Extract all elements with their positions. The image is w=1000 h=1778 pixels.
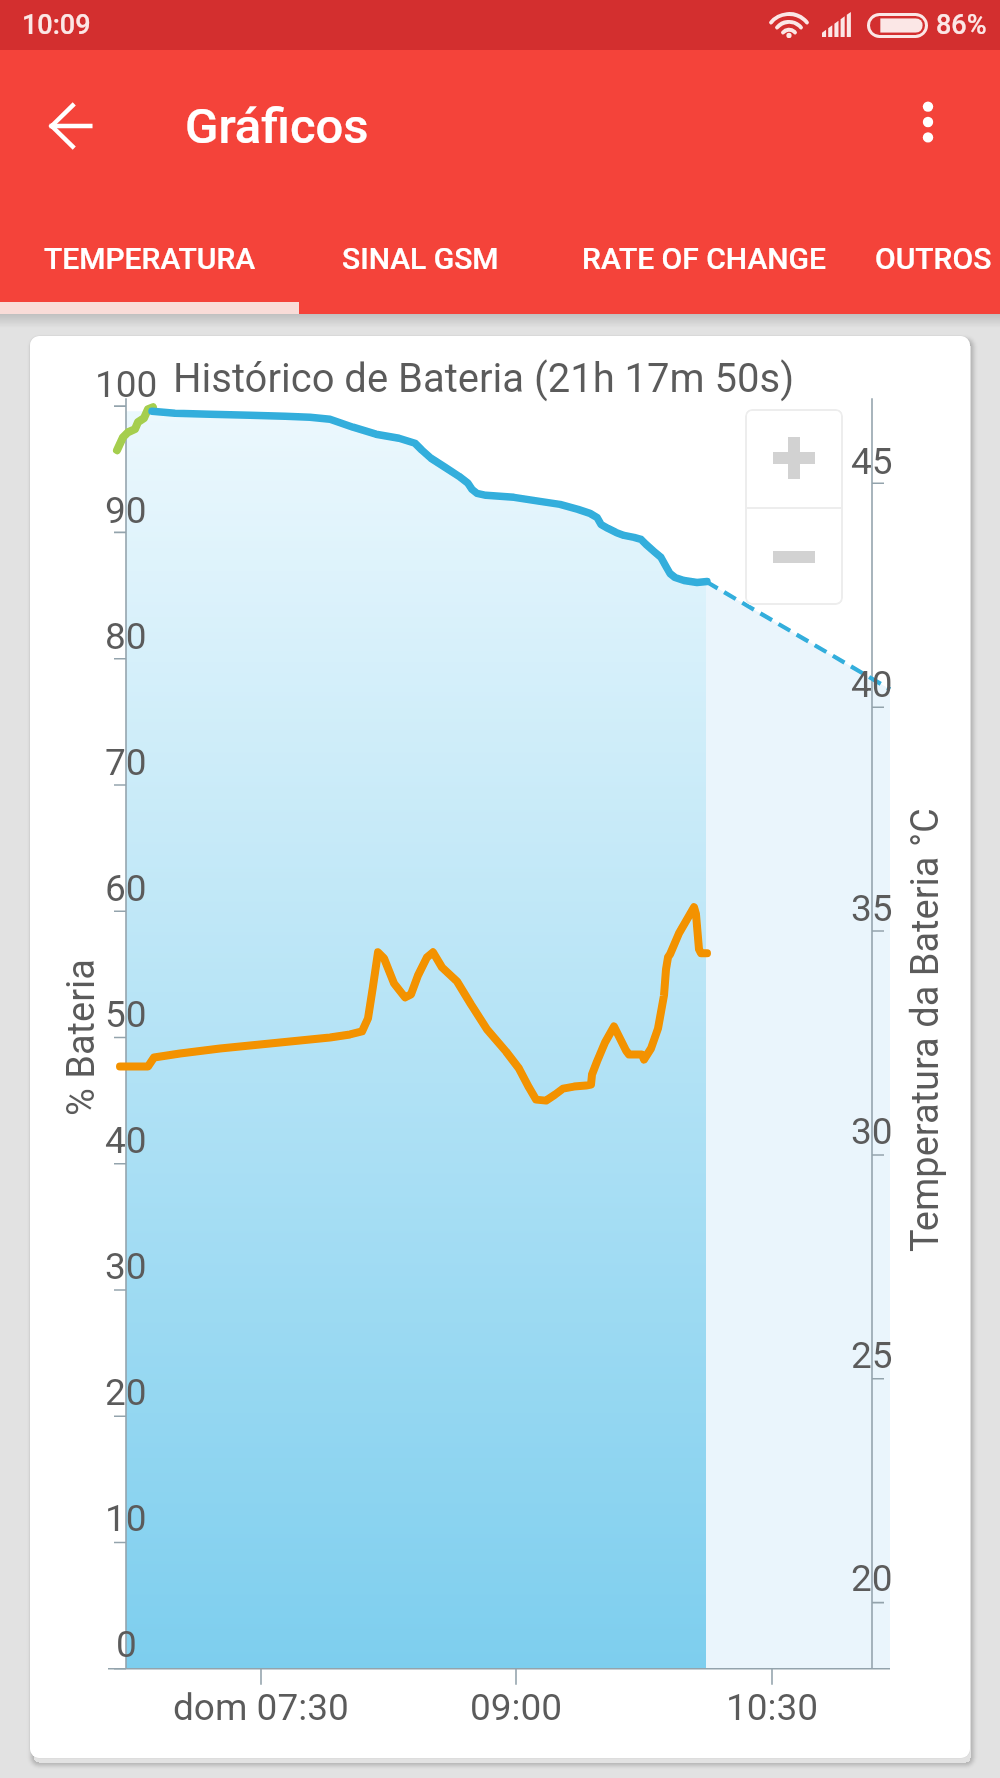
staticText: 100: [95, 363, 158, 406]
staticText: Histórico de Bateria (21h 17m 50s): [173, 355, 795, 402]
button[interactable]: More options: [884, 78, 972, 166]
staticText: 20: [851, 1557, 893, 1600]
staticText: 40: [851, 663, 893, 706]
staticText: 10: [105, 1497, 147, 1540]
staticText: dom 07:30: [173, 1686, 349, 1729]
staticText: 35: [851, 887, 893, 930]
staticText: 20: [105, 1371, 147, 1414]
staticText: SINAL GSM: [342, 241, 499, 276]
staticText: 60: [105, 867, 147, 910]
staticText: 30: [105, 1245, 147, 1288]
staticText: 50: [105, 993, 147, 1036]
staticText: 80: [105, 615, 147, 658]
staticText: RATE OF CHANGE: [582, 241, 826, 276]
button[interactable]: Zoom in: [745, 409, 843, 507]
button[interactable]: RATE OF CHANGE: [541, 202, 867, 314]
staticText: Gráficos: [185, 98, 369, 155]
button[interactable]: Zoom out: [745, 509, 843, 605]
staticText: 40: [105, 1119, 147, 1162]
staticText: 09:00: [470, 1686, 563, 1729]
staticText: 10:30: [726, 1686, 819, 1729]
staticText: 0: [116, 1623, 137, 1666]
staticText: OUTROS: [875, 241, 992, 276]
staticText: 86%: [936, 9, 987, 41]
button[interactable]: Back: [27, 82, 115, 170]
staticText: Temperatura da Bateria °C: [903, 808, 948, 1252]
staticText: TEMPERATURA: [44, 241, 256, 276]
staticText: 10:09: [22, 9, 91, 41]
staticText: 70: [105, 741, 147, 784]
staticText: 25: [851, 1334, 893, 1377]
button[interactable]: SINAL GSM: [299, 202, 541, 314]
button[interactable]: OUTROS: [867, 202, 1000, 314]
staticText: 45: [851, 440, 893, 483]
staticText: % Bateria: [59, 959, 104, 1116]
staticText: 90: [105, 489, 147, 532]
button[interactable]: TEMPERATURA: [0, 202, 299, 314]
staticText: 30: [851, 1110, 893, 1153]
